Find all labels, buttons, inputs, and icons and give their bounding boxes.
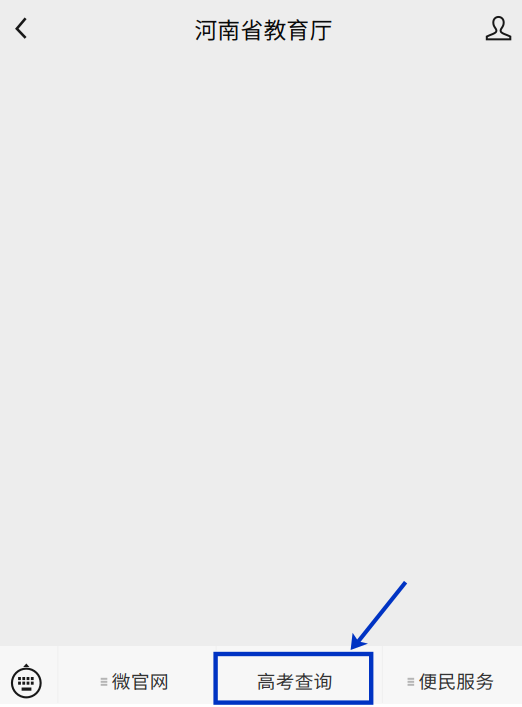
button[interactable]: Back [0, 0, 50, 58]
button[interactable]: 便民服务 [383, 646, 522, 707]
staticText: 河南省教育厅 [194, 12, 332, 45]
staticText: 微官网 [112, 667, 169, 694]
button[interactable]: Contact [472, 0, 522, 58]
button[interactable]: 微官网 [58, 646, 216, 707]
button[interactable]: Keyboard [0, 646, 57, 707]
staticText: 高考查询 [257, 667, 333, 694]
staticText: 便民服务 [419, 667, 495, 694]
button[interactable]: 高考查询 [217, 646, 382, 707]
